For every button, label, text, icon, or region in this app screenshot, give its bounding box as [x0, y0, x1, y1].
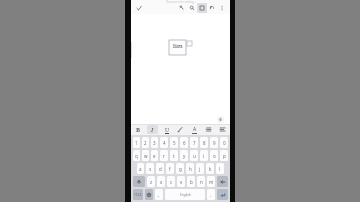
- staticText: f: [169, 166, 171, 172]
- staticText: z: [150, 179, 153, 185]
- button[interactable]: m: [207, 176, 215, 187]
- staticText: v: [180, 179, 183, 185]
- staticText: 8: [203, 140, 206, 146]
- staticText: d: [159, 166, 162, 172]
- button[interactable]: 4: [160, 137, 168, 148]
- staticText: h: [189, 166, 192, 172]
- button[interactable]: 7: [190, 137, 198, 148]
- staticText: 9: [213, 140, 216, 146]
- staticText: I: [151, 126, 154, 134]
- button[interactable]: f: [166, 163, 174, 174]
- button[interactable]: Edit mode: [197, 3, 207, 13]
- button[interactable]: a: [137, 163, 144, 174]
- button[interactable]: 6: [180, 137, 188, 148]
- staticText: 6: [183, 140, 186, 146]
- staticText: a: [139, 166, 142, 172]
- staticText: r: [163, 153, 165, 159]
- staticText: 1: [135, 140, 138, 146]
- button[interactable]: 9: [210, 137, 218, 148]
- button[interactable]: lim: [169, 40, 192, 55]
- button[interactable]: ,: [155, 189, 163, 200]
- button[interactable]: Text color: [189, 125, 200, 134]
- button[interactable]: p: [220, 150, 228, 161]
- button[interactable]: c: [167, 176, 175, 187]
- staticText: e: [153, 153, 156, 159]
- staticText: Document is saving…: [166, 0, 196, 4]
- button[interactable]: r: [160, 150, 168, 161]
- staticText: lim: [173, 42, 183, 50]
- button[interactable]: n: [197, 176, 205, 187]
- button[interactable]: b: [187, 176, 195, 187]
- button[interactable]: k: [206, 163, 214, 174]
- staticText: 0: [223, 140, 226, 146]
- staticText: q: [135, 153, 138, 159]
- button[interactable]: 3: [151, 137, 158, 148]
- staticText: B: [136, 126, 141, 134]
- staticText: 7: [193, 140, 196, 146]
- button[interactable]: w: [142, 150, 149, 161]
- button[interactable]: 5: [170, 137, 178, 148]
- staticText: 4: [163, 140, 166, 146]
- button[interactable]: More options: [217, 3, 227, 13]
- button[interactable]: z: [147, 176, 155, 187]
- button[interactable]: Alignment: [217, 125, 228, 134]
- button[interactable]: ?123: [133, 189, 143, 200]
- button[interactable]: Space: [165, 189, 205, 200]
- staticText: b: [190, 179, 193, 185]
- staticText: j: [199, 166, 201, 172]
- button[interactable]: l: [216, 163, 224, 174]
- button[interactable]: 1: [133, 137, 140, 148]
- button[interactable]: q: [133, 150, 140, 161]
- button[interactable]: Enter: [217, 189, 228, 200]
- button[interactable]: y: [180, 150, 188, 161]
- button[interactable]: I: [147, 125, 158, 134]
- button[interactable]: j: [196, 163, 204, 174]
- button[interactable]: 0: [220, 137, 228, 148]
- staticText: w: [144, 153, 148, 159]
- staticText: p: [223, 153, 226, 159]
- button[interactable]: Insert: [177, 3, 187, 13]
- button[interactable]: Backspace: [217, 176, 228, 187]
- button[interactable]: Voice input: [217, 116, 224, 123]
- staticText: y: [183, 153, 186, 159]
- staticText: .: [210, 192, 212, 198]
- button[interactable]: Shift: [133, 176, 145, 187]
- staticText: 5: [173, 140, 176, 146]
- button[interactable]: 2: [142, 137, 149, 148]
- button[interactable]: g: [176, 163, 184, 174]
- button[interactable]: u: [190, 150, 198, 161]
- staticText: g: [179, 166, 182, 172]
- button[interactable]: Highlight: [175, 125, 186, 134]
- staticText: m: [209, 179, 214, 185]
- button[interactable]: Bold: [133, 125, 144, 134]
- button[interactable]: Underline: [161, 125, 172, 134]
- button[interactable]: Emoji: [145, 189, 153, 200]
- button[interactable]: o: [210, 150, 218, 161]
- button[interactable]: d: [156, 163, 164, 174]
- staticText: o: [213, 153, 216, 159]
- button[interactable]: Search: [187, 3, 197, 13]
- staticText: t: [173, 153, 175, 159]
- button[interactable]: i: [200, 150, 208, 161]
- button[interactable]: .: [207, 189, 215, 200]
- button[interactable]: h: [186, 163, 194, 174]
- button[interactable]: v: [177, 176, 185, 187]
- button[interactable]: Done: [134, 3, 144, 13]
- button[interactable]: s: [146, 163, 154, 174]
- button[interactable]: Undo: [207, 3, 217, 13]
- staticText: k: [209, 166, 212, 172]
- button[interactable]: x: [157, 176, 165, 187]
- staticText: x: [160, 179, 163, 185]
- staticText: l: [219, 166, 221, 172]
- staticText: A: [193, 126, 197, 133]
- button[interactable]: 8: [200, 137, 208, 148]
- button[interactable]: e: [151, 150, 158, 161]
- button[interactable]: t: [170, 150, 178, 161]
- staticText: s: [149, 166, 152, 172]
- staticText: ?123: [134, 192, 142, 197]
- staticText: n: [200, 179, 203, 185]
- staticText: U: [165, 126, 169, 133]
- staticText: English: [180, 193, 191, 197]
- button[interactable]: Numbered list: [203, 125, 214, 134]
